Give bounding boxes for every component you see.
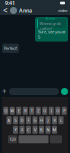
staticText: Q (4, 108, 7, 113)
staticText: N (46, 127, 49, 132)
button[interactable]: O (55, 107, 60, 115)
staticText: A (7, 118, 10, 123)
staticText: Anna (45, 15, 54, 21)
button[interactable]: W (10, 107, 15, 115)
staticText: B (40, 127, 43, 132)
staticText: E (18, 108, 20, 113)
button[interactable]: N (45, 126, 50, 134)
staticText: O (56, 108, 59, 113)
staticText: C (27, 127, 30, 132)
staticText: Wanna grab coffee? (39, 21, 60, 31)
staticText: + (2, 86, 7, 97)
button[interactable]: M (52, 126, 57, 134)
staticText: W (10, 108, 14, 113)
button[interactable]: X (19, 126, 24, 134)
staticText: K (53, 118, 55, 123)
staticText: 123 (9, 137, 15, 142)
staticText: L (60, 118, 62, 123)
button[interactable]: R (23, 107, 28, 115)
button[interactable]: Video call (58, 8, 67, 13)
staticText: P (63, 108, 65, 113)
staticText: < (3, 5, 8, 16)
button[interactable]: F (26, 116, 31, 124)
button[interactable]: J (45, 116, 50, 124)
staticText: S (14, 118, 16, 123)
staticText: I (51, 108, 52, 113)
button[interactable]: Z (36, 107, 41, 115)
button[interactable] (50, 135, 62, 143)
button[interactable]: I (49, 107, 54, 115)
button[interactable]: G (32, 116, 37, 124)
button[interactable]: A (6, 116, 11, 124)
staticText: Anna (19, 7, 32, 14)
button[interactable]: D (19, 116, 24, 124)
staticText: video (58, 8, 67, 13)
button[interactable] (18, 135, 48, 143)
staticText: R (24, 108, 26, 113)
button[interactable]: S (13, 116, 18, 124)
staticText: F (27, 118, 29, 123)
button[interactable]: C (26, 126, 31, 134)
staticText: Perfect! (4, 46, 17, 51)
button[interactable]: E (16, 107, 21, 115)
staticText: M (52, 127, 56, 132)
button[interactable]: U (42, 107, 47, 115)
button[interactable]: T (29, 107, 34, 115)
staticText: H (40, 118, 43, 123)
button[interactable]: L (58, 116, 63, 124)
staticText: T (31, 108, 33, 113)
button[interactable]: Attach (2, 86, 7, 97)
button[interactable]: Y (13, 126, 18, 134)
button[interactable]: B (39, 126, 44, 134)
staticText: G (33, 118, 36, 123)
staticText: D (20, 118, 23, 123)
button[interactable]: Q (3, 107, 8, 115)
staticText: Y (14, 127, 16, 132)
button[interactable]: V (32, 126, 37, 134)
staticText: V (34, 127, 36, 132)
button[interactable]: P (62, 107, 67, 115)
button[interactable]: Back (3, 5, 8, 16)
staticText: 9:41 (5, 0, 15, 7)
staticText: U (43, 108, 46, 113)
button[interactable]: Send (61, 88, 68, 95)
staticText: X (21, 127, 23, 132)
staticText: Sure, see you at 5 (38, 29, 65, 40)
button[interactable]: K (52, 116, 57, 124)
button[interactable]: 123 (8, 135, 17, 143)
staticText: Z (37, 108, 39, 113)
button[interactable]: H (39, 116, 44, 124)
